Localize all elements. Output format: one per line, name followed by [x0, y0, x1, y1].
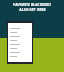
staticText: FAVORITE BLACKBIRD — [13, 2, 51, 7]
staticText: ALSO GET HERE — [19, 7, 46, 12]
